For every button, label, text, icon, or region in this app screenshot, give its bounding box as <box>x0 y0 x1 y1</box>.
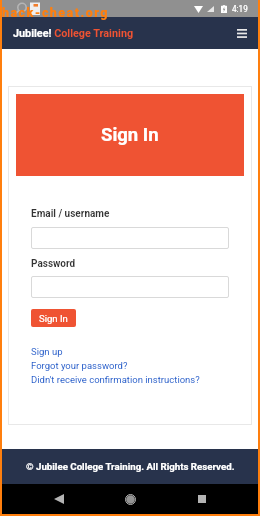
staticText: Sign In <box>101 124 159 146</box>
button[interactable]: Recents <box>187 484 217 514</box>
button[interactable]: Home <box>115 484 145 514</box>
staticText: Email / username <box>31 208 110 220</box>
staticText: Forgot your password? <box>31 360 128 371</box>
button[interactable]: Didn't receive confirmation instructions… <box>31 372 200 386</box>
button[interactable]: Menu <box>230 21 254 45</box>
button[interactable]: Back <box>44 484 74 514</box>
staticText: Jubilee! College Training <box>13 27 134 40</box>
staticText: Didn't receive confirmation instructions… <box>31 374 200 385</box>
button[interactable]: Sign In <box>31 309 76 327</box>
staticText: Password <box>31 258 76 270</box>
staticText: Sign up <box>31 346 63 357</box>
button[interactable]: Forgot your password? <box>31 358 128 372</box>
staticText: © Jubilee College Training. All Rights R… <box>26 461 235 472</box>
staticText: 4:19 <box>232 4 248 14</box>
staticText: hack-cheat.org <box>2 5 109 20</box>
button[interactable]: Sign up <box>31 344 63 358</box>
staticText: Sign In <box>39 313 68 324</box>
